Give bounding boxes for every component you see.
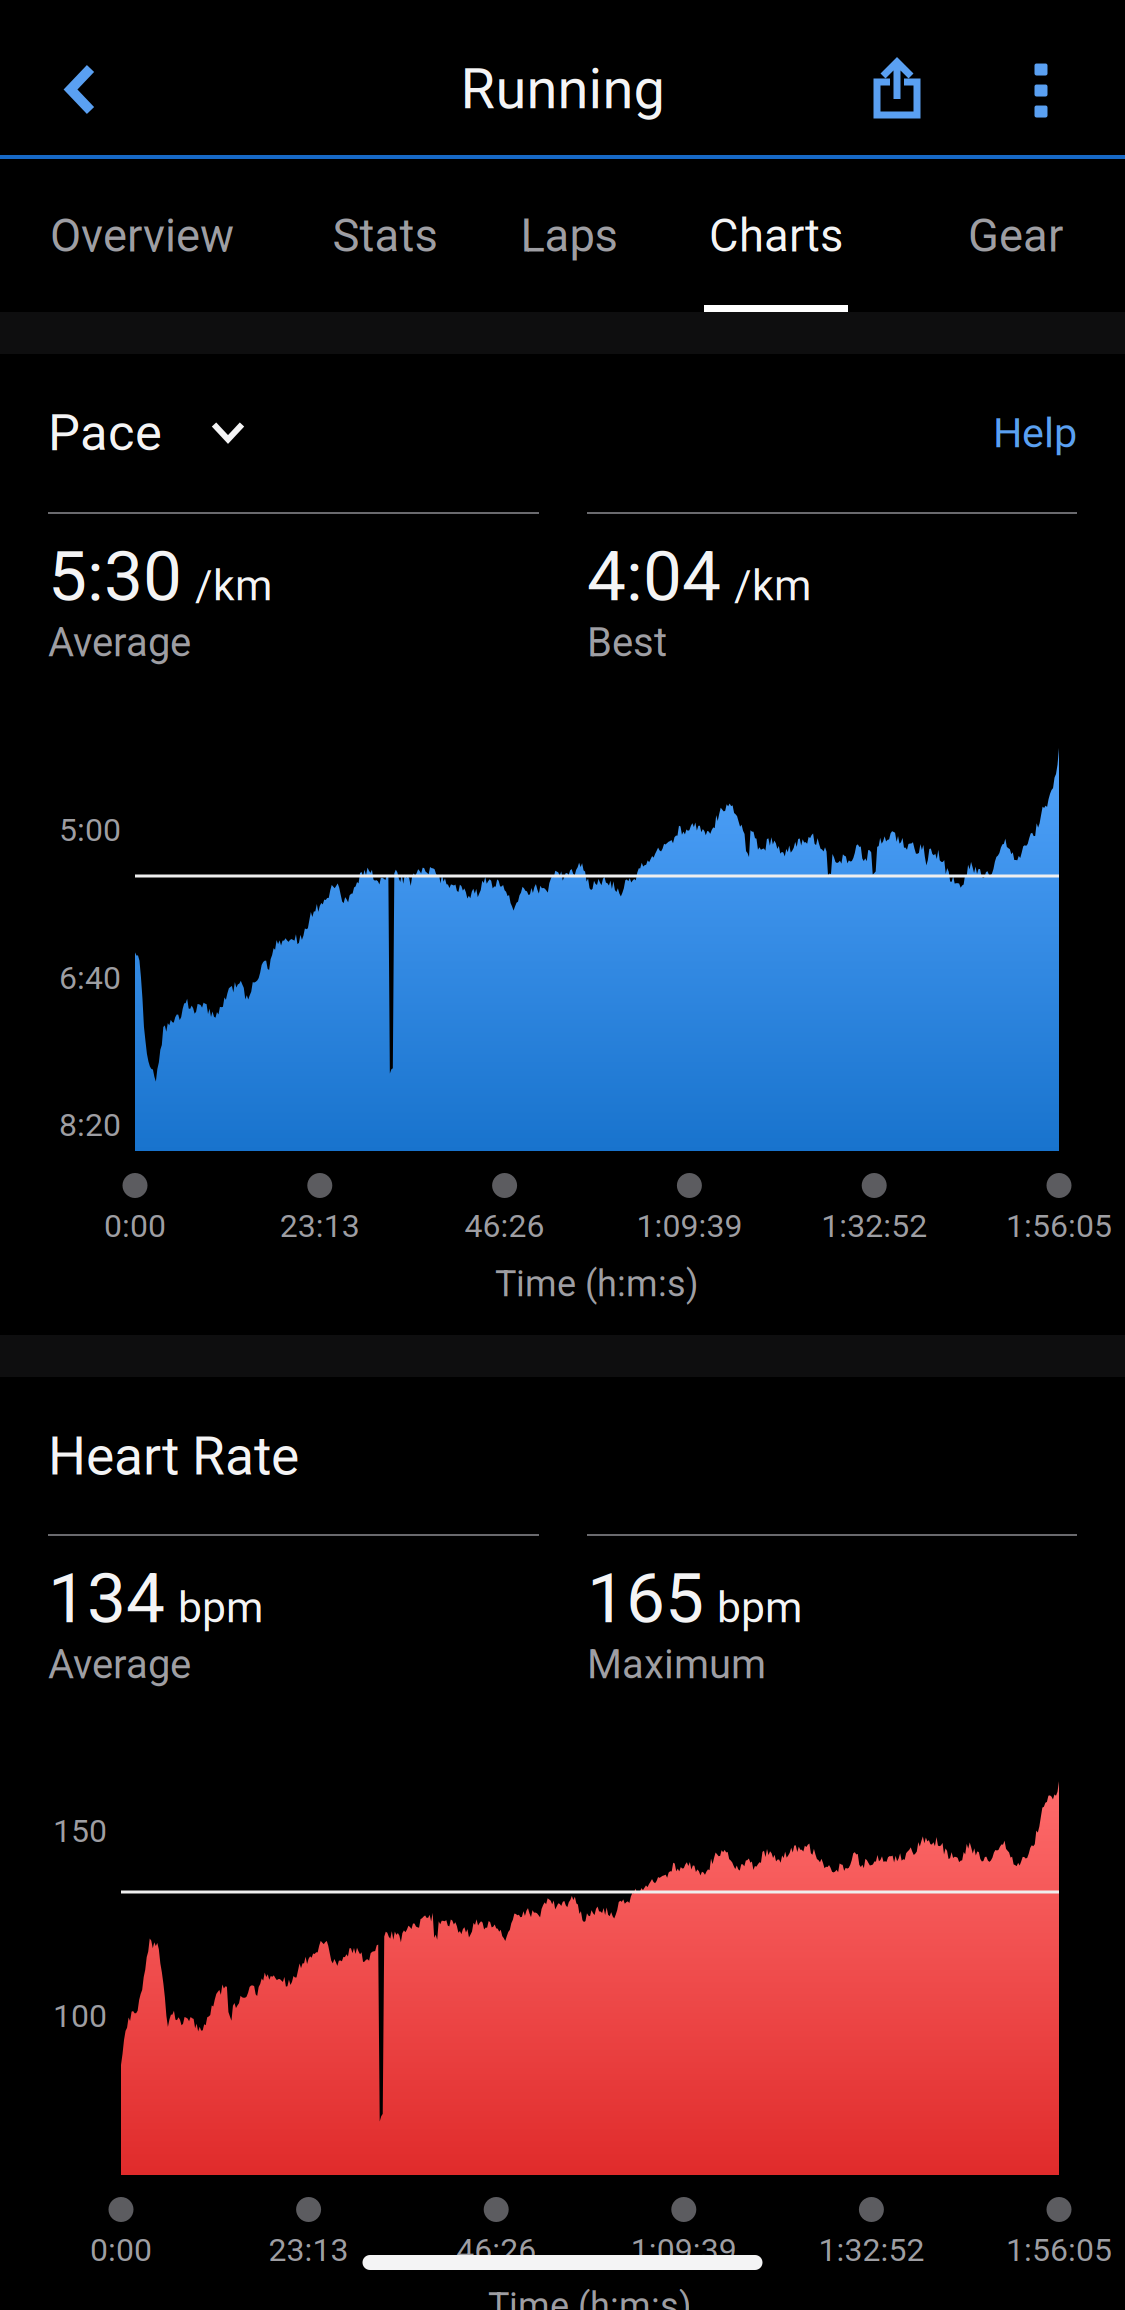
button[interactable]: Stats <box>317 159 453 312</box>
staticText: 6:40 <box>59 959 121 997</box>
button[interactable]: Overview <box>34 159 250 312</box>
staticText: Pace <box>48 403 162 463</box>
staticText: 5:00 <box>59 811 121 849</box>
staticText: 23:13 <box>269 2231 349 2269</box>
staticText: Stats <box>332 209 437 262</box>
button[interactable]: Charts <box>690 159 862 312</box>
staticText: Average <box>48 1641 191 1688</box>
staticText: Charts <box>709 209 843 262</box>
staticText: Overview <box>50 209 234 262</box>
staticText: 0:00 <box>90 2231 152 2269</box>
button[interactable]: More options <box>986 13 1096 168</box>
staticText: /km <box>734 561 811 611</box>
staticText: 5:30 <box>48 536 182 617</box>
staticText: /km <box>195 561 272 611</box>
staticText: 46:26 <box>456 2231 536 2269</box>
staticText: bpm <box>717 1583 802 1633</box>
staticText: Help <box>993 409 1077 457</box>
staticText: 1:32:52 <box>818 2231 924 2269</box>
staticText: 100 <box>53 1997 107 2035</box>
staticText: 23:13 <box>280 1207 360 1245</box>
button[interactable]: Back <box>18 12 142 167</box>
staticText: 1:56:05 <box>1006 2231 1112 2269</box>
staticText: Time (h:m:s) <box>488 2285 692 2310</box>
staticText: Running <box>460 56 664 122</box>
staticText: Heart Rate <box>48 1425 299 1487</box>
staticText: 8:20 <box>59 1106 121 1144</box>
staticText: 134 <box>48 1558 165 1639</box>
staticText: 4:04 <box>587 536 721 617</box>
staticText: 46:26 <box>465 1207 545 1245</box>
button[interactable]: Laps <box>506 159 632 312</box>
staticText: 0:00 <box>104 1207 166 1245</box>
button[interactable]: Gear <box>953 159 1078 312</box>
button[interactable]: Help <box>897 398 1077 468</box>
staticText: 150 <box>53 1812 107 1850</box>
staticText: Gear <box>968 209 1063 262</box>
staticText: Average <box>48 619 191 666</box>
staticText: Maximum <box>587 1641 766 1688</box>
button[interactable]: Pace <box>48 398 271 468</box>
staticText: Laps <box>520 209 617 262</box>
staticText: 1:09:39 <box>631 2231 737 2269</box>
staticText: 1:32:52 <box>821 1207 927 1245</box>
button[interactable]: Share <box>832 11 962 166</box>
staticText: 1:56:05 <box>1006 1207 1112 1245</box>
staticText: 1:09:39 <box>636 1207 742 1245</box>
staticText: 165 <box>587 1558 704 1639</box>
staticText: bpm <box>178 1583 263 1633</box>
staticText: Time (h:m:s) <box>495 1263 699 1305</box>
staticText: Best <box>587 619 667 666</box>
